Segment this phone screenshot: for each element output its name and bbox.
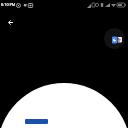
button[interactable]: Translate — [104, 28, 125, 49]
staticText: 8:10 PM — [1, 2, 16, 7]
button[interactable]: Back — [2, 14, 18, 30]
